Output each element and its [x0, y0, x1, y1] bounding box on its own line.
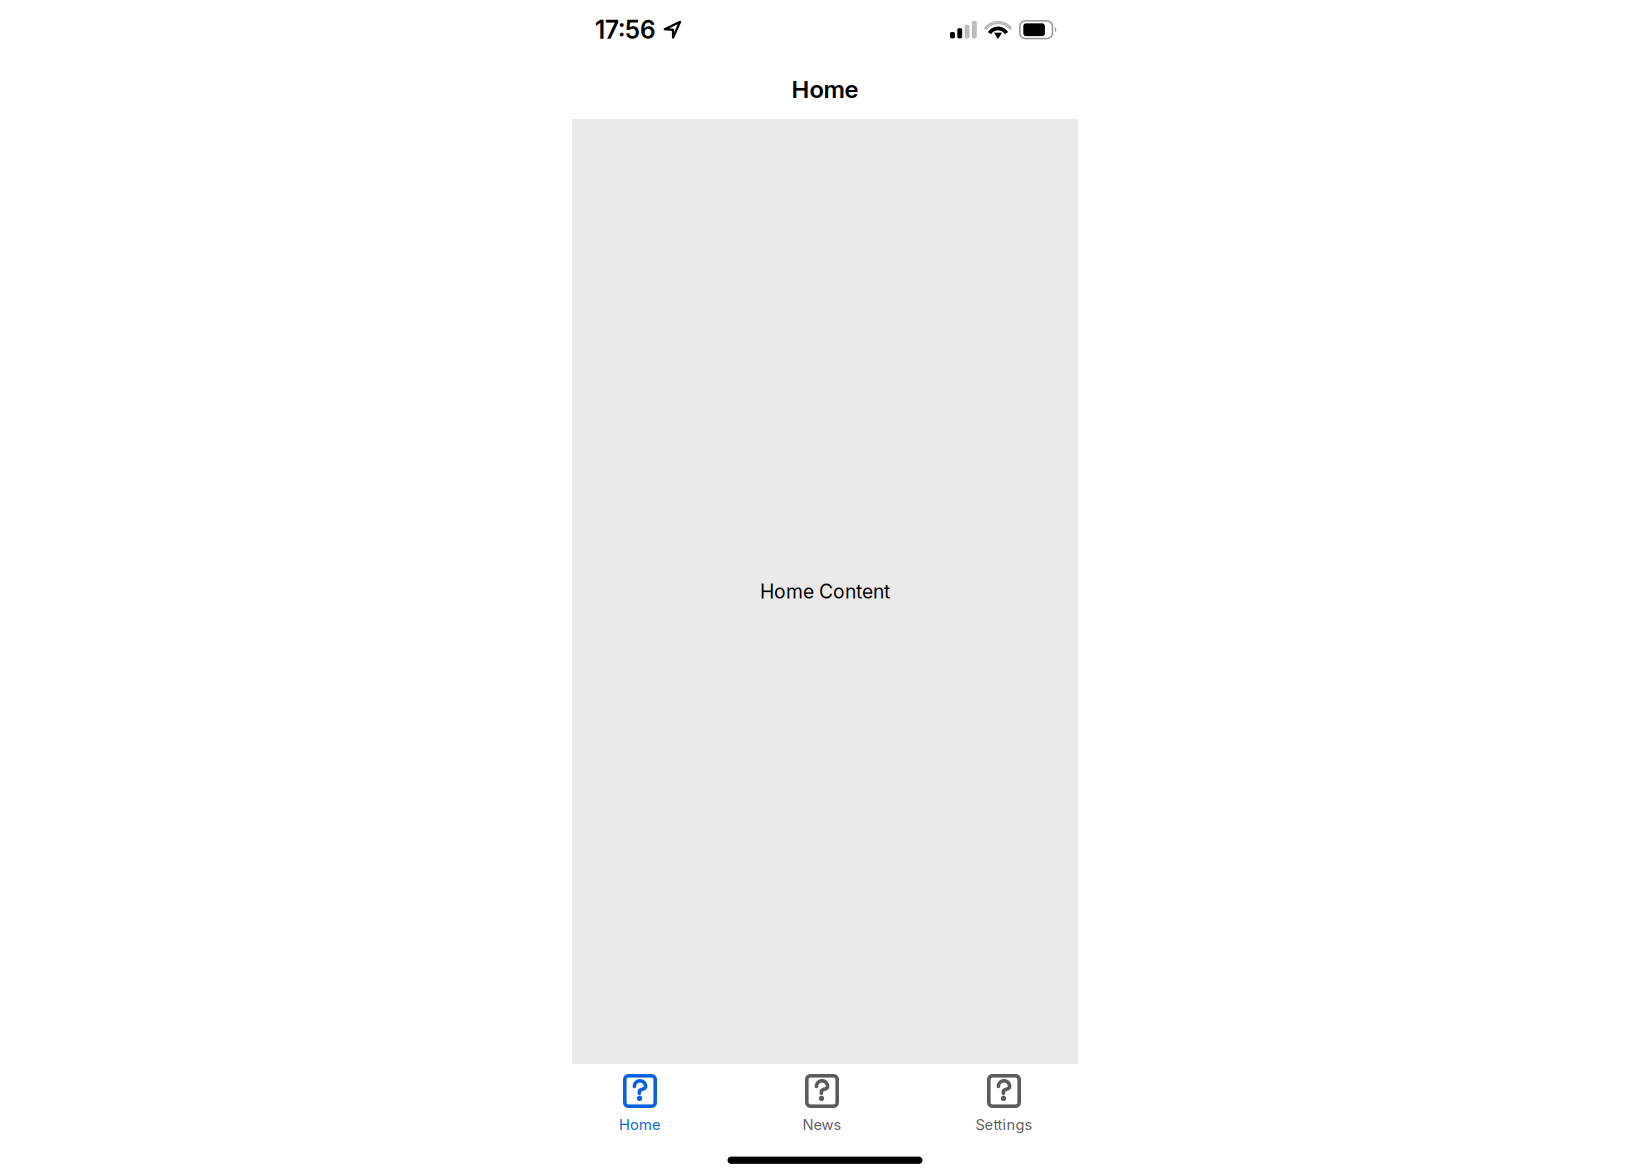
staticText: 17:56 [595, 15, 656, 44]
staticText: News [802, 1116, 841, 1133]
button[interactable]: News [754, 1064, 890, 1130]
staticText: Settings [975, 1116, 1032, 1133]
staticText: Home [791, 75, 858, 103]
staticText: Home [619, 1116, 661, 1133]
staticText: Home Content [760, 580, 890, 603]
button[interactable]: Home [572, 1064, 708, 1130]
button[interactable]: Settings [936, 1064, 1072, 1130]
